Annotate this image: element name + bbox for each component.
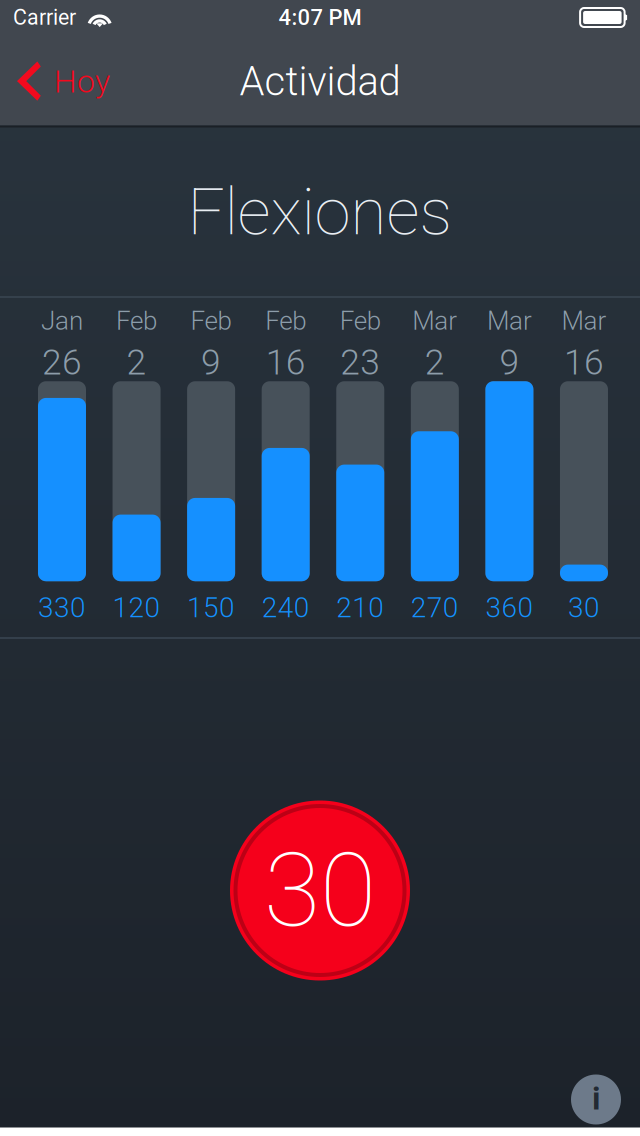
- staticText: Hoy: [54, 63, 110, 100]
- staticText: 4:07 PM: [278, 5, 361, 30]
- staticText: 9: [201, 342, 221, 383]
- staticText: Carrier: [13, 5, 76, 30]
- button[interactable]: Hoy: [0, 37, 130, 125]
- staticText: Flexiones: [187, 174, 452, 250]
- staticText: 23: [340, 342, 380, 383]
- staticText: 26: [42, 342, 82, 383]
- staticText: Jan: [41, 305, 83, 336]
- staticText: Feb: [340, 305, 381, 336]
- staticText: 9: [499, 342, 519, 383]
- staticText: 16: [266, 342, 306, 383]
- staticText: 2: [425, 342, 445, 383]
- staticText: 210: [336, 591, 384, 624]
- staticText: i: [592, 1080, 600, 1117]
- staticText: Mar: [561, 305, 606, 336]
- staticText: 150: [187, 591, 235, 624]
- button[interactable]: 30: [230, 800, 410, 980]
- staticText: 360: [485, 591, 533, 624]
- staticText: Feb: [265, 305, 306, 336]
- staticText: Actividad: [239, 58, 400, 105]
- staticText: Mar: [487, 305, 532, 336]
- staticText: 2: [127, 342, 147, 383]
- staticText: 120: [113, 591, 161, 624]
- staticText: 270: [411, 591, 459, 624]
- staticText: 240: [262, 591, 310, 624]
- staticText: 16: [564, 342, 604, 383]
- staticText: 30: [568, 591, 600, 624]
- button[interactable]: Information: [571, 1074, 621, 1124]
- staticText: Feb: [116, 305, 157, 336]
- staticText: 30: [264, 830, 376, 951]
- staticText: Feb: [191, 305, 232, 336]
- staticText: Mar: [412, 305, 457, 336]
- staticText: 330: [38, 591, 86, 624]
